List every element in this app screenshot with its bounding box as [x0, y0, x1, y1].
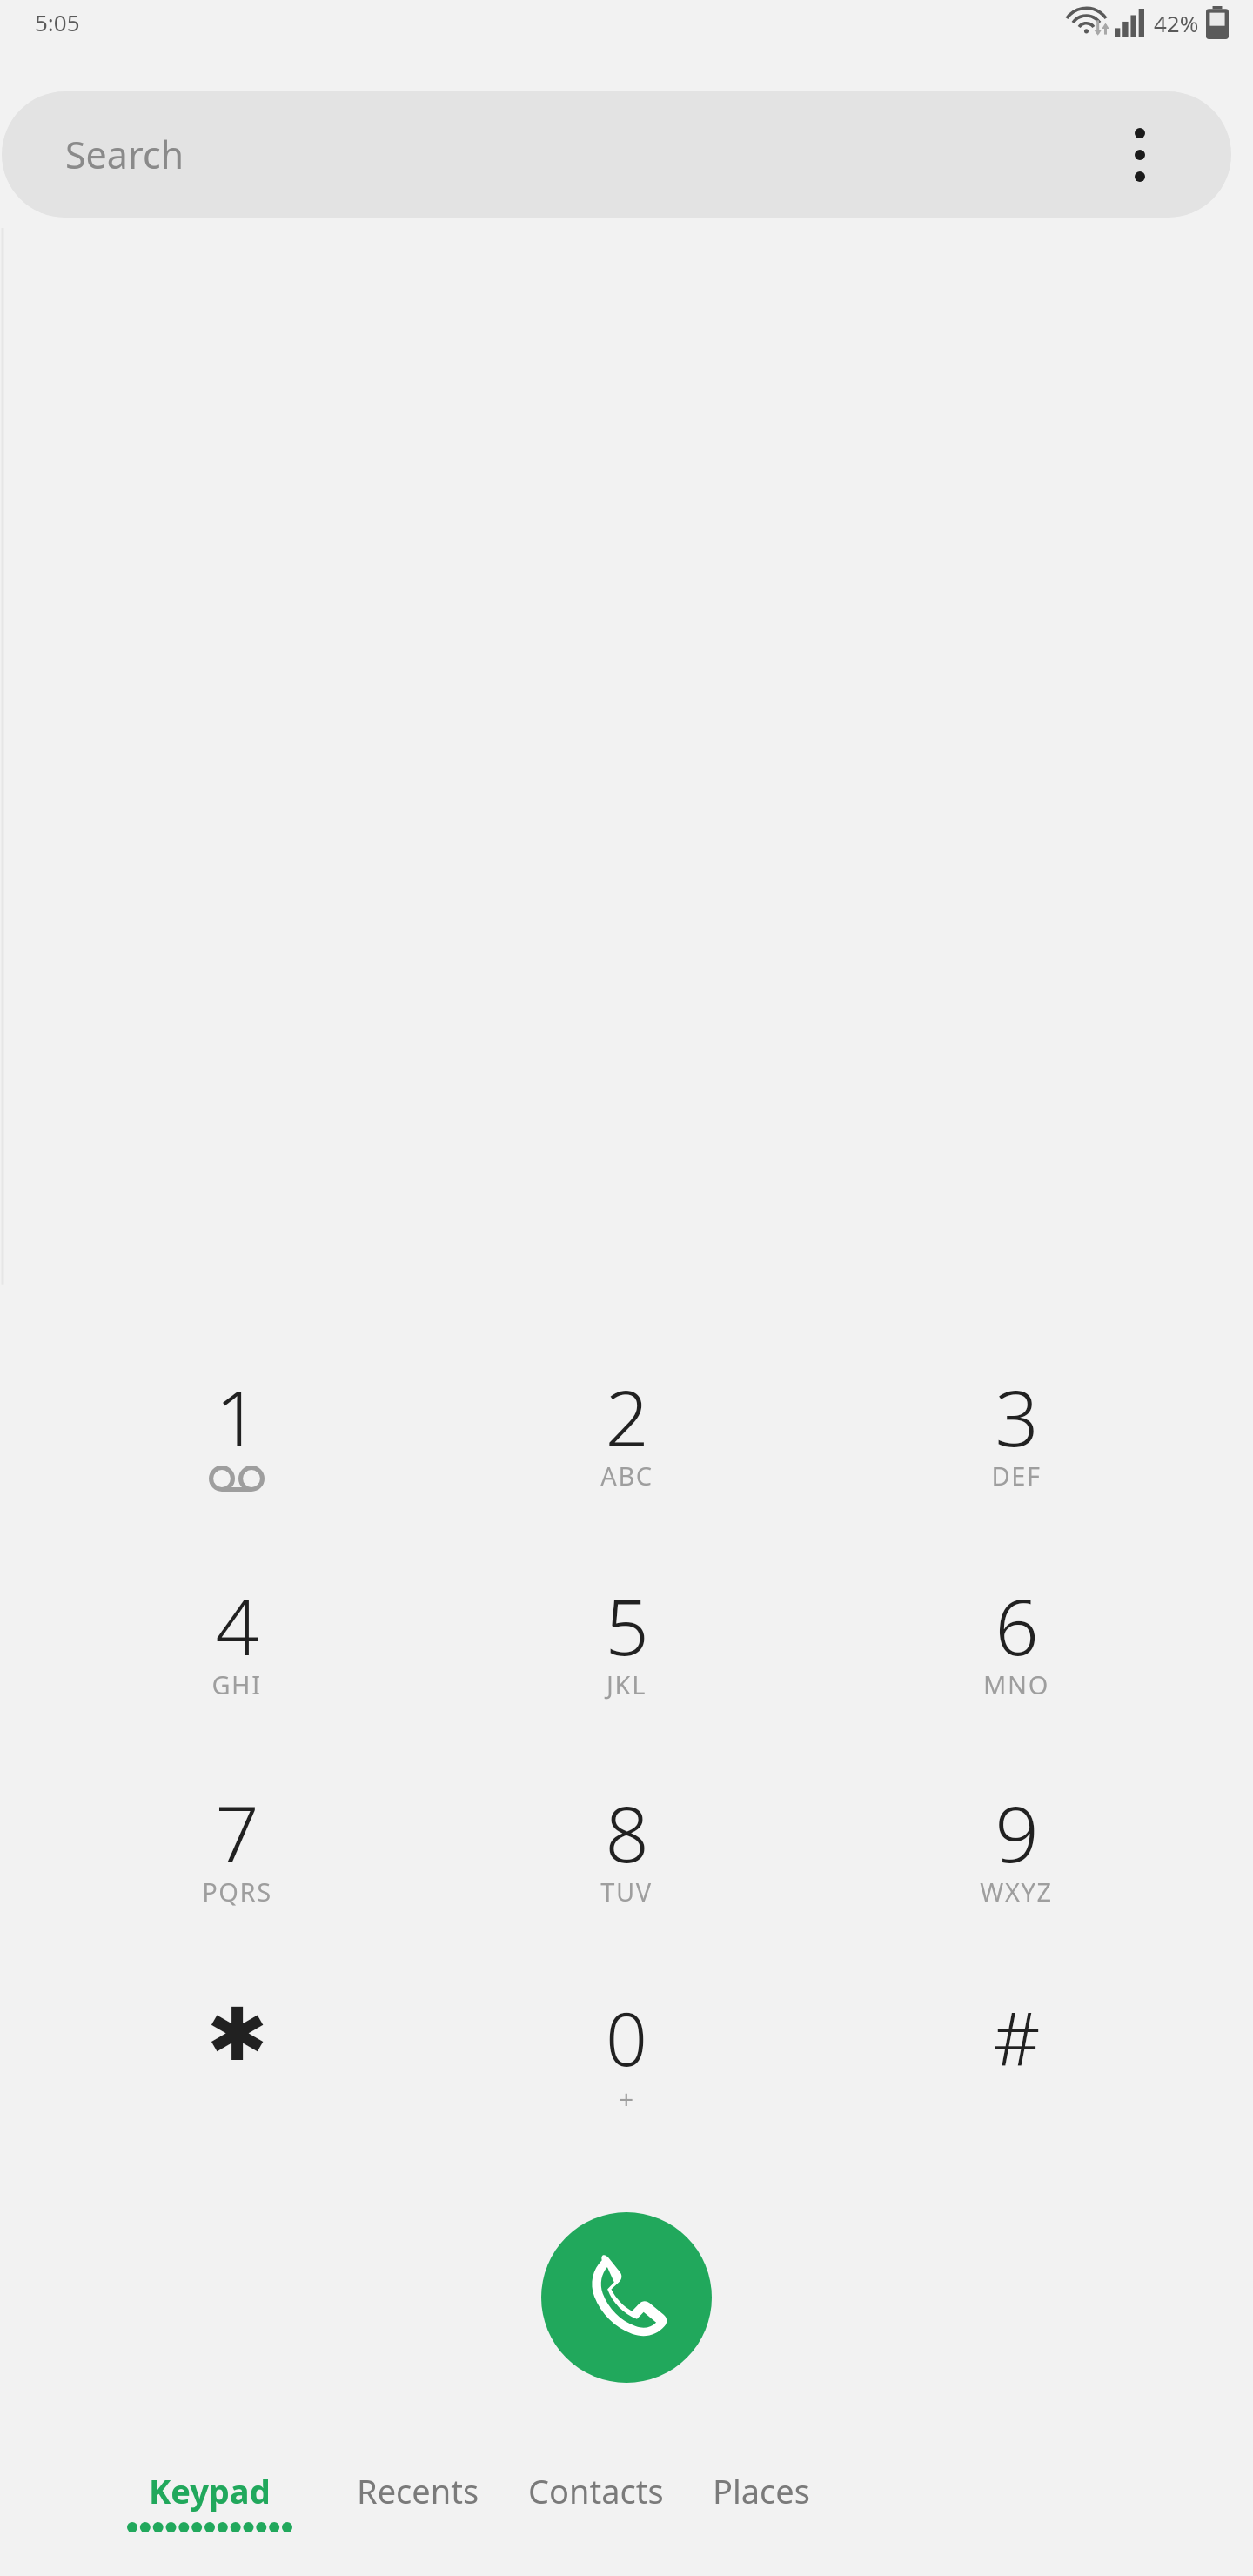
staticText: 4 — [215, 1573, 259, 1667]
staticText: 2 — [605, 1365, 649, 1459]
staticText: # — [993, 1988, 1041, 2082]
staticText: 3 — [995, 1365, 1039, 1459]
staticText: TUV — [600, 1875, 653, 1909]
staticText: 6 — [995, 1573, 1039, 1667]
staticText: GHI — [211, 1667, 262, 1701]
staticText: 0 — [606, 1988, 647, 2082]
staticText: DEF — [991, 1459, 1042, 1493]
button[interactable]: Call — [541, 2212, 712, 2383]
button[interactable]: 6 — [821, 1573, 1211, 1781]
staticText: MNO — [983, 1667, 1049, 1701]
staticText: Search — [65, 129, 184, 180]
button[interactable]: 4 — [42, 1573, 432, 1781]
button[interactable]: Contacts — [528, 2468, 664, 2532]
button[interactable]: 9 — [821, 1781, 1211, 1988]
staticText: ABC — [600, 1459, 653, 1493]
button[interactable]: Search — [2, 91, 1231, 218]
staticText: JKL — [606, 1667, 647, 1701]
staticText: Places — [713, 2468, 810, 2513]
button[interactable]: ✱ — [42, 1988, 432, 2162]
button[interactable]: More options — [1098, 113, 1182, 197]
staticText: 8 — [605, 1781, 649, 1875]
button[interactable]: 8 — [432, 1781, 821, 1988]
staticText: 9 — [995, 1781, 1039, 1875]
staticText: PQRS — [202, 1875, 272, 1909]
staticText: 5:05 — [35, 7, 80, 37]
button[interactable]: 5 — [432, 1573, 821, 1781]
button[interactable]: 7 — [42, 1781, 432, 1988]
staticText: Contacts — [528, 2468, 664, 2513]
staticText: 42% — [1154, 8, 1199, 38]
button[interactable]: Recents — [357, 2468, 479, 2532]
button[interactable]: 1 — [42, 1365, 432, 1573]
button[interactable]: 2 — [432, 1365, 821, 1573]
staticText: Keypad — [149, 2468, 271, 2513]
button[interactable]: Places — [713, 2468, 810, 2532]
staticText: Recents — [357, 2468, 479, 2513]
staticText: 1 — [215, 1365, 259, 1459]
button[interactable]: # — [821, 1988, 1211, 2162]
staticText: 5 — [605, 1573, 649, 1667]
staticText: + — [619, 2082, 635, 2116]
button[interactable]: Keypad — [127, 2468, 292, 2532]
staticText: WXYZ — [980, 1875, 1053, 1909]
staticText: 7 — [215, 1781, 259, 1875]
button[interactable]: 3 — [821, 1365, 1211, 1573]
staticText: ✱ — [206, 1992, 268, 2077]
button[interactable]: 0 — [432, 1988, 821, 2162]
